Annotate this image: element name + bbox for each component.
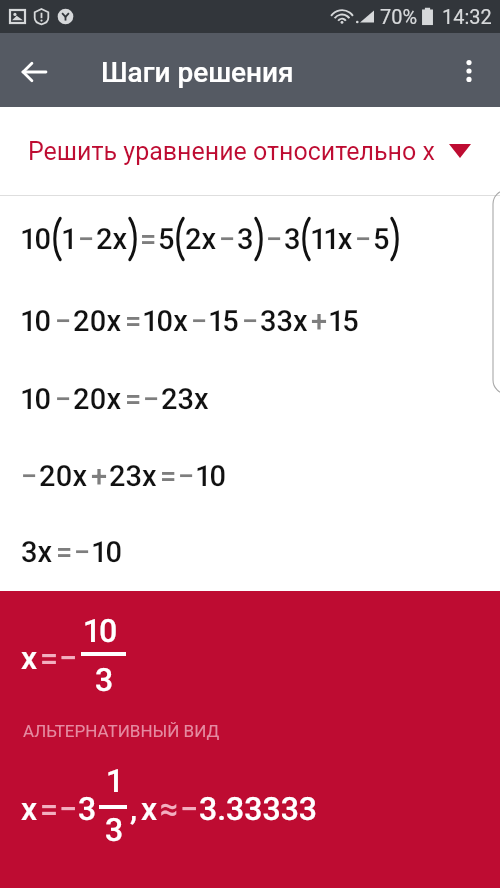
- staticText: +: [91, 459, 108, 493]
- staticText: 10: [21, 382, 52, 416]
- staticText: ,: [130, 790, 138, 828]
- staticText: −: [59, 790, 77, 828]
- staticText: 3: [105, 811, 124, 849]
- staticText: =: [40, 639, 58, 677]
- staticText: −: [242, 304, 259, 338]
- staticText: 11x: [311, 222, 353, 256]
- staticText: x: [21, 790, 38, 828]
- staticText: 1: [62, 222, 76, 256]
- staticText: 3.33333: [199, 790, 318, 828]
- staticText: −: [74, 535, 91, 569]
- staticText: −: [191, 304, 208, 338]
- staticText: ≈: [160, 790, 179, 828]
- staticText: 3x: [21, 535, 53, 569]
- staticText: 3: [237, 222, 254, 256]
- staticText: −: [178, 459, 195, 493]
- staticText: −: [55, 304, 72, 338]
- staticText: 20x: [39, 459, 88, 493]
- staticText: =: [125, 304, 142, 338]
- staticText: 10: [21, 304, 52, 338]
- staticText: 10: [84, 612, 118, 650]
- staticText: −: [266, 222, 283, 256]
- staticText: 10: [196, 459, 227, 493]
- button[interactable]: More options: [447, 49, 491, 93]
- staticText: 20x: [73, 382, 122, 416]
- staticText: −: [59, 639, 77, 677]
- staticText: 10x: [143, 304, 188, 338]
- staticText: 5: [373, 222, 390, 256]
- staticText: −: [143, 382, 160, 416]
- staticText: =: [40, 790, 58, 828]
- staticText: 14:32: [442, 5, 492, 28]
- staticText: 3: [284, 222, 301, 256]
- staticText: 20x: [73, 304, 122, 338]
- staticText: 10: [21, 222, 52, 256]
- staticText: 23x: [161, 382, 209, 416]
- button[interactable]: Back: [12, 50, 56, 94]
- staticText: 3: [95, 661, 114, 699]
- staticText: 33x: [260, 304, 308, 338]
- staticText: 2x: [96, 222, 128, 256]
- staticText: −: [355, 222, 372, 256]
- staticText: x: [141, 790, 158, 828]
- staticText: 1: [107, 762, 122, 800]
- staticText: −: [78, 222, 95, 256]
- staticText: =: [140, 222, 157, 256]
- staticText: 70%: [380, 5, 418, 28]
- staticText: −: [55, 382, 72, 416]
- staticText: 15: [329, 304, 359, 338]
- staticText: Решить уравнение относительно x: [28, 137, 435, 166]
- staticText: 5: [158, 222, 175, 256]
- staticText: −: [180, 790, 198, 828]
- staticText: АЛЬТЕРНАТИВНЫЙ ВИД: [23, 721, 220, 741]
- staticText: Шаги решения: [101, 56, 294, 89]
- staticText: 23x: [109, 459, 157, 493]
- staticText: =: [56, 535, 73, 569]
- staticText: 10: [92, 535, 123, 569]
- staticText: 3: [78, 790, 97, 828]
- staticText: −: [21, 459, 38, 493]
- staticText: =: [125, 382, 142, 416]
- staticText: =: [160, 459, 177, 493]
- staticText: −: [219, 222, 236, 256]
- staticText: 15: [209, 304, 239, 338]
- button[interactable]: Решить уравнение относительно x: [0, 107, 500, 195]
- staticText: 2x: [185, 222, 217, 256]
- staticText: x: [21, 639, 38, 677]
- staticText: +: [311, 304, 328, 338]
